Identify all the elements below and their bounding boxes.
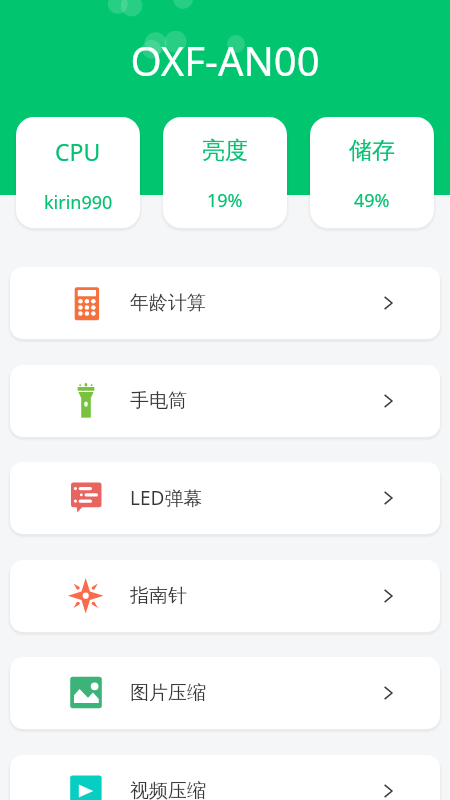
staticText: 19% bbox=[207, 188, 243, 213]
staticText: 视频压缩 bbox=[130, 779, 206, 800]
staticText: 亮度 bbox=[202, 136, 248, 165]
staticText: 指南针 bbox=[130, 584, 187, 608]
staticText: CPU bbox=[55, 136, 101, 167]
button[interactable]: CPU bbox=[16, 117, 140, 228]
staticText: 储存 bbox=[349, 136, 395, 165]
button[interactable]: 指南针 bbox=[10, 560, 440, 632]
button[interactable]: 图片压缩 bbox=[10, 657, 440, 729]
button[interactable]: LED弹幕 bbox=[10, 462, 440, 534]
button[interactable]: 视频压缩 bbox=[10, 755, 440, 800]
staticText: OXF-AN00 bbox=[0, 33, 450, 87]
staticText: 图片压缩 bbox=[130, 681, 206, 705]
button[interactable]: 储存 bbox=[310, 117, 434, 228]
button[interactable]: 亮度 bbox=[163, 117, 287, 228]
button[interactable]: 手电筒 bbox=[10, 365, 440, 437]
button[interactable]: 年龄计算 bbox=[10, 267, 440, 339]
staticText: LED弹幕 bbox=[130, 485, 203, 511]
staticText: 49% bbox=[354, 188, 390, 213]
staticText: 年龄计算 bbox=[130, 291, 206, 315]
staticText: kirin990 bbox=[44, 190, 113, 215]
staticText: 手电筒 bbox=[130, 389, 187, 413]
